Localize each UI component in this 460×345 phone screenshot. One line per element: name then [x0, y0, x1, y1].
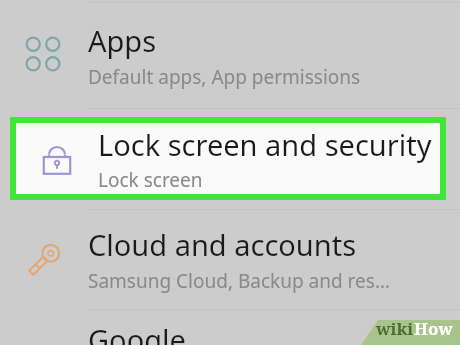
staticText: wiki	[376, 317, 414, 340]
button[interactable]: Apps	[0, 3, 460, 107]
staticText: Lock screen	[98, 167, 203, 193]
button[interactable]: Lock screen and security	[10, 117, 446, 200]
staticText: Lock screen and security	[98, 125, 432, 164]
staticText: How	[414, 317, 453, 340]
staticText: Cloud and accounts	[88, 225, 357, 264]
staticText: Google	[88, 320, 186, 345]
staticText: Samsung Cloud, Backup and res…	[88, 268, 390, 294]
staticText: Apps	[88, 21, 157, 60]
staticText: Default apps, App permissions	[88, 64, 361, 90]
button[interactable]: Google	[0, 310, 460, 345]
button[interactable]: Cloud and accounts	[0, 210, 460, 309]
